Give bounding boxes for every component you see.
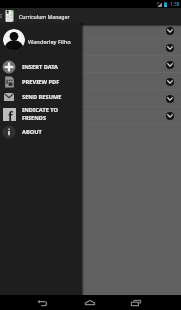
button[interactable]: PREVIEW PDF [0,74,81,89]
staticText: PREVIEW PDF [22,78,60,86]
staticText: INDICATE TO FRIENDS [22,106,59,122]
button[interactable]: Expand item [166,61,174,69]
button[interactable]: Expand item [166,78,174,86]
button[interactable]: Expand item [166,95,174,103]
staticText: Wanderley Filho [28,38,71,46]
button[interactable]: Wanderley Filho [0,23,81,59]
button[interactable]: f [0,104,81,124]
button[interactable]: Recent apps [124,295,148,310]
staticText: Curriculum Manager [19,13,70,20]
button[interactable]: Back [30,295,54,310]
staticText: f [8,108,13,121]
staticText: SEND RESUME [22,93,62,101]
staticText: INSERT DATA [22,63,59,71]
button[interactable]: Expand item [166,44,174,52]
staticText: ABOUT [22,128,42,136]
button[interactable]: Home [78,295,102,310]
button[interactable]: Expand item [166,27,174,35]
button[interactable]: Expand item [166,112,174,120]
button[interactable]: INSERT DATA [0,59,81,74]
button[interactable]: Expand item [0,107,181,124]
button[interactable]: Expand item [0,56,181,73]
button[interactable]: ABOUT [0,124,81,140]
button[interactable]: Expand item [0,90,181,107]
button[interactable]: Expand item [0,22,181,39]
button[interactable]: Expand item [0,73,181,90]
button[interactable]: Expand item [0,39,181,56]
staticText: 1:38 [170,1,180,8]
button[interactable]: SEND RESUME [0,89,81,104]
other: Open navigation drawer [0,14,2,18]
